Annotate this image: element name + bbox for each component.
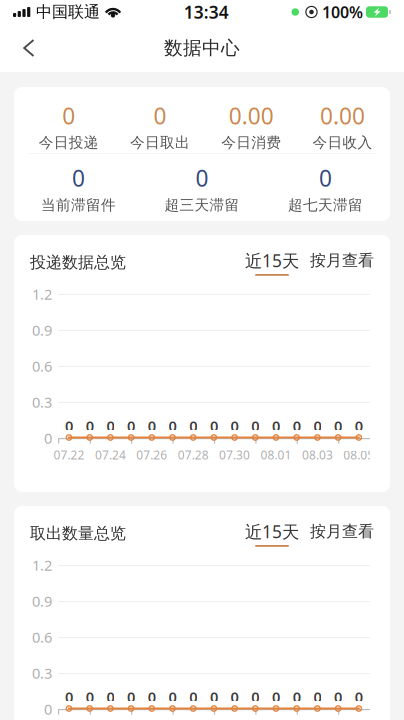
staticText: 100%	[322, 1, 363, 23]
button[interactable]: Back	[12, 26, 46, 69]
staticText: 0	[44, 699, 52, 719]
staticText: 0	[210, 687, 218, 706]
staticText: 超七天滞留	[288, 196, 363, 214]
staticText: 07.24	[95, 447, 126, 463]
staticText: 0	[148, 416, 156, 435]
staticText: 0.9	[32, 591, 52, 611]
staticText: 0	[355, 416, 363, 435]
staticText: 0	[153, 101, 166, 131]
staticText: 07.22	[53, 447, 84, 463]
staticText: 0	[293, 687, 301, 706]
staticText: 0.00	[320, 101, 365, 131]
staticText: 0	[313, 687, 321, 706]
staticText: 07.30	[219, 447, 250, 463]
staticText: 0.3	[32, 392, 52, 412]
staticText: 0	[106, 416, 114, 435]
staticText: 08.05	[343, 447, 374, 463]
staticText: 按月查看	[310, 522, 374, 541]
staticText: 今日取出	[130, 134, 190, 152]
staticText: 0	[168, 687, 176, 706]
staticText: 0	[210, 416, 218, 435]
staticText: 1.2	[32, 284, 52, 304]
button[interactable]: 近15天	[245, 520, 299, 547]
staticText: 近15天	[245, 249, 299, 272]
staticText: 今日消费	[221, 134, 281, 152]
staticText: 0	[86, 416, 94, 435]
staticText: 08.03	[302, 447, 333, 463]
staticText: 投递数据总览	[30, 253, 126, 272]
staticText: 中国联通	[36, 2, 100, 22]
staticText: 0.9	[32, 320, 52, 340]
staticText: 0	[127, 687, 135, 706]
button[interactable]: 按月查看	[299, 251, 374, 274]
staticText: 0	[319, 163, 332, 193]
staticText: 数据中心	[164, 36, 240, 59]
staticText: 0	[168, 416, 176, 435]
staticText: 0	[231, 416, 239, 435]
staticText: 0.3	[32, 663, 52, 683]
staticText: 0	[334, 416, 342, 435]
staticText: 0	[251, 687, 259, 706]
staticText: 取出数量总览	[30, 524, 126, 543]
staticText: 07.28	[178, 447, 209, 463]
staticText: 0	[106, 687, 114, 706]
staticText: 今日投递	[39, 134, 99, 152]
button[interactable]: 近15天	[245, 249, 299, 276]
staticText: 0	[251, 416, 259, 435]
staticText: 0.00	[229, 101, 274, 131]
staticText: 08.01	[260, 447, 291, 463]
staticText: 0.6	[32, 356, 52, 376]
staticText: 0.6	[32, 627, 52, 647]
staticText: 0	[148, 687, 156, 706]
staticText: 0	[272, 687, 280, 706]
staticText: 0	[62, 101, 75, 131]
staticText: 0	[65, 687, 73, 706]
staticText: 0	[44, 428, 52, 448]
staticText: 0	[189, 687, 197, 706]
staticText: 按月查看	[310, 251, 374, 270]
staticText: 近15天	[245, 520, 299, 543]
staticText: 0	[334, 687, 342, 706]
staticText: 0	[86, 687, 94, 706]
staticText: 0	[355, 687, 363, 706]
staticText: 07.26	[136, 447, 167, 463]
staticText: 0	[189, 416, 197, 435]
staticText: 1.2	[32, 555, 52, 575]
staticText: 13:34	[184, 0, 229, 23]
staticText: 0	[127, 416, 135, 435]
staticText: 0	[313, 416, 321, 435]
staticText: 0	[72, 163, 85, 193]
staticText: 0	[272, 416, 280, 435]
button[interactable]: 按月查看	[299, 522, 374, 545]
staticText: 0	[231, 687, 239, 706]
staticText: 0	[293, 416, 301, 435]
staticText: 0	[195, 163, 208, 193]
staticText: 今日收入	[312, 134, 372, 152]
staticText: 超三天滞留	[164, 196, 239, 214]
staticText: 当前滞留件	[41, 196, 116, 214]
staticText: 0	[65, 416, 73, 435]
